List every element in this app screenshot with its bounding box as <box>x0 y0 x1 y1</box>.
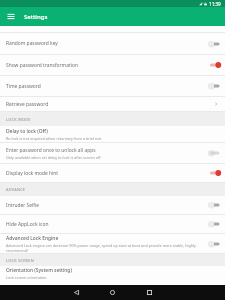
button[interactable]: Delay to lock (Off) <box>0 126 225 142</box>
staticText: LOCK SCREEN <box>6 258 34 263</box>
button[interactable]: Switch on <box>208 168 220 178</box>
button[interactable]: Switch off <box>208 200 220 210</box>
button[interactable]: Switch off <box>208 219 220 229</box>
button[interactable]: Orientation (System setting) <box>0 266 225 281</box>
staticText: Random password key <box>6 40 58 47</box>
button[interactable]: Switch on <box>208 60 220 70</box>
staticText: Advanced Lock Engine <box>6 235 59 242</box>
staticText: Time password <box>6 83 41 90</box>
button[interactable]: Random password key <box>0 33 225 54</box>
staticText: 11:39 <box>209 1 221 7</box>
staticText: Intruder Selfie <box>6 202 39 209</box>
button[interactable]: Recent apps <box>141 285 157 300</box>
staticText: Hide AppLock icon <box>6 221 49 228</box>
button[interactable]: Switch off <box>208 81 220 91</box>
staticText: LOCK MODE <box>6 117 31 122</box>
staticText: Retrieve password <box>6 101 213 108</box>
staticText: Advanced Lock engine can decrease 90% po… <box>6 243 204 253</box>
staticText: Lock screen orientation <box>6 275 47 280</box>
staticText: Display lock mode hint <box>6 170 59 177</box>
staticText: Delay to lock (Off) <box>6 128 48 135</box>
button[interactable]: Home <box>104 285 120 300</box>
button[interactable]: Show password transformation <box>0 55 225 75</box>
staticText: Re-lock is not required when returning f… <box>6 136 102 141</box>
staticText: ADVANCE <box>6 187 26 192</box>
button[interactable]: Switch off <box>208 239 220 249</box>
button[interactable]: Enter password once to unlock all apps <box>0 143 225 163</box>
button[interactable]: Back <box>68 285 84 300</box>
staticText: Enter password once to unlock all apps <box>6 147 96 154</box>
staticText: Settings <box>24 13 48 21</box>
button[interactable]: Display lock mode hint <box>0 164 225 182</box>
button[interactable]: Open navigation drawer <box>0 7 22 26</box>
button[interactable]: Retrieve password <box>0 97 225 111</box>
button[interactable]: Intruder Selfie <box>0 196 225 214</box>
staticText: Orientation (System setting) <box>6 267 72 274</box>
button[interactable]: Time password <box>0 76 225 96</box>
button[interactable]: Advanced Lock Engine <box>0 234 225 253</box>
button[interactable]: Hide AppLock icon <box>0 215 225 233</box>
button[interactable]: Switch off <box>208 39 220 49</box>
staticText: Only available when set delay to lock is… <box>6 155 101 160</box>
staticText: Show password transformation <box>6 62 78 69</box>
button[interactable]: Switch off <box>208 148 220 158</box>
